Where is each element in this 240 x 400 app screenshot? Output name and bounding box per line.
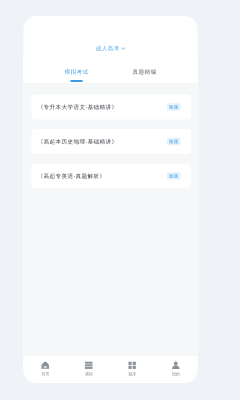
staticText: 成人高考 — [95, 45, 119, 52]
button[interactable]: 真题精编 — [110, 68, 178, 82]
staticText: 做题 — [169, 139, 179, 144]
button[interactable]: 题库 — [110, 355, 154, 382]
staticText: 做题 — [169, 104, 179, 110]
staticText: 题库 — [128, 371, 136, 377]
staticText: 模拟考试 — [64, 68, 88, 76]
button[interactable]: 课程 — [67, 355, 110, 382]
button[interactable]: 《高起本历史地理-基础精讲》 — [31, 129, 191, 154]
staticText: 首页 — [41, 371, 49, 377]
staticText: 做题 — [169, 173, 179, 179]
button[interactable]: 《专升本大学语文-基础精讲》 — [31, 94, 191, 119]
button[interactable]: 首页 — [23, 355, 67, 382]
staticText: 《高起专英语-真题解析》 — [37, 172, 105, 180]
button[interactable]: 《高起专英语-真题解析》 — [31, 163, 191, 188]
staticText: 我的 — [172, 371, 180, 377]
button[interactable]: 我的 — [154, 355, 197, 382]
staticText: 《专升本大学语文-基础精讲》 — [37, 103, 117, 111]
staticText: 真题精编 — [132, 68, 156, 76]
staticText: 《高起本历史地理-基础精讲》 — [37, 138, 117, 145]
staticText: 课程 — [85, 371, 93, 377]
button[interactable]: 模拟考试 — [42, 68, 110, 82]
